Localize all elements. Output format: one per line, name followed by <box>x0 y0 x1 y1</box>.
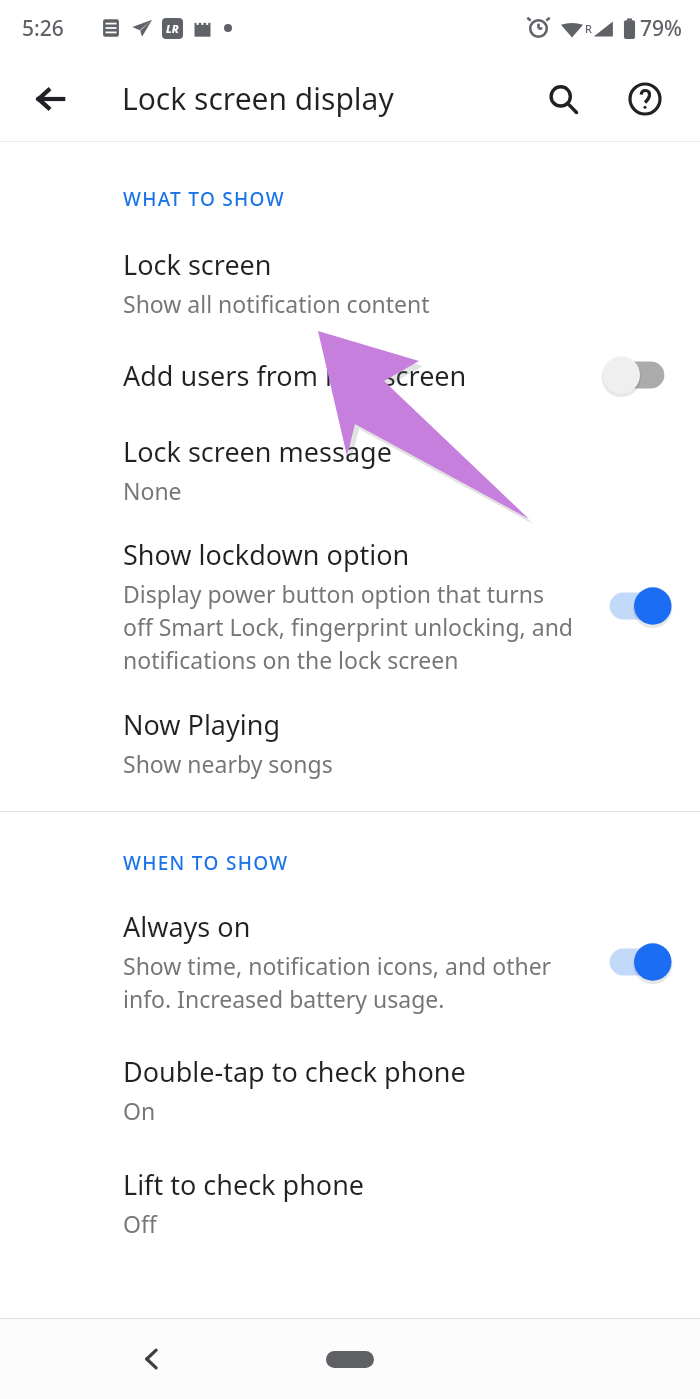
staticText: Always on <box>123 908 251 945</box>
button[interactable]: On <box>600 936 674 988</box>
staticText: WHAT TO SHOW <box>123 186 285 212</box>
button[interactable]: Home <box>315 1319 385 1399</box>
staticText: Lock screen <box>123 246 272 283</box>
staticText: Off <box>123 1208 157 1239</box>
button[interactable]: Lift to check phone <box>0 1166 700 1259</box>
staticText: Double-tap to check phone <box>123 1053 466 1090</box>
staticText: Show nearby songs <box>123 748 333 779</box>
staticText: LR <box>166 21 179 36</box>
button[interactable]: Now Playing <box>0 706 700 811</box>
button[interactable]: Back <box>22 71 78 127</box>
staticText: Show lockdown option <box>123 536 410 573</box>
staticText: On <box>123 1095 156 1126</box>
button[interactable]: Help <box>616 70 674 128</box>
button[interactable]: Show lockdown option <box>0 536 700 706</box>
staticText: 5:26 <box>22 14 64 43</box>
staticText: Lock screen message <box>123 433 392 470</box>
staticText: Show time, notification icons, and other… <box>123 950 552 1015</box>
button[interactable]: Always on <box>0 908 700 1053</box>
button[interactable]: On <box>600 580 674 632</box>
button[interactable]: Search <box>534 70 592 128</box>
staticText: WHEN TO SHOW <box>123 850 289 876</box>
staticText: 79% <box>640 14 682 43</box>
button[interactable]: Lock screen message <box>0 433 700 536</box>
button[interactable]: Lock screen <box>0 246 700 349</box>
button[interactable]: Off <box>600 349 674 401</box>
button[interactable]: Back <box>122 1328 184 1390</box>
staticText: Now Playing <box>123 706 281 743</box>
button[interactable]: Double-tap to check phone <box>0 1053 700 1166</box>
staticText: Lift to check phone <box>123 1166 365 1203</box>
staticText: R <box>585 21 592 36</box>
staticText: Lock screen display <box>122 78 394 119</box>
staticText: Display power button option that turns o… <box>123 578 574 676</box>
button[interactable]: Add users from lock screen <box>0 349 700 433</box>
staticText: Add users from lock screen <box>123 357 467 394</box>
staticText: None <box>123 475 182 506</box>
staticText: Show all notification content <box>123 288 430 319</box>
